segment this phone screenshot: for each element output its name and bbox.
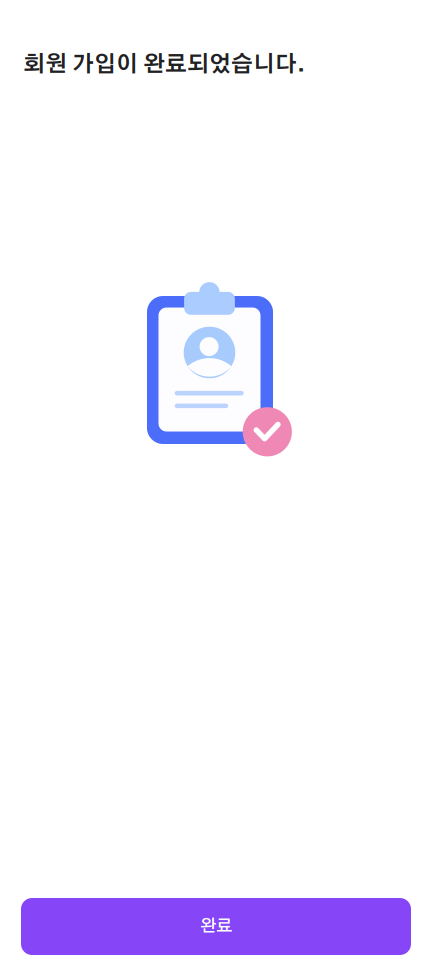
staticText: 회원 가입이 완료되었습니다. xyxy=(23,54,305,76)
button[interactable]: 완료 xyxy=(21,898,411,955)
staticText: 완료 xyxy=(200,918,232,935)
